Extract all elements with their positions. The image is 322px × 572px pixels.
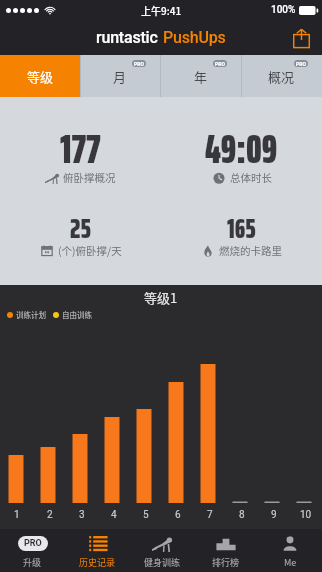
staticText: 6 <box>175 509 181 521</box>
staticText: 7 <box>207 509 213 521</box>
staticText: 100% <box>271 4 296 16</box>
button[interactable]: 等级 <box>0 55 80 97</box>
button[interactable]: 概况 <box>241 55 322 97</box>
staticText: 等级 <box>27 67 54 86</box>
staticText: 8 <box>239 509 245 521</box>
staticText: 升级 <box>23 556 42 569</box>
staticText: 历史记录 <box>79 556 116 569</box>
staticText: PRO <box>296 61 306 67</box>
staticText: PRO <box>24 538 42 549</box>
staticText: 25 <box>70 207 91 249</box>
button[interactable]: 年 <box>160 55 241 97</box>
button[interactable]: 月 <box>80 55 160 97</box>
staticText: (个)俯卧撑/天 <box>58 243 122 258</box>
button[interactable]: Share <box>287 24 315 52</box>
staticText: 5 <box>143 509 149 521</box>
staticText: 等级1 <box>144 288 178 307</box>
staticText: 训练计划 <box>16 309 46 320</box>
staticText: 1 <box>14 509 20 521</box>
button[interactable]: 历史记录 <box>65 529 130 572</box>
staticText: 月 <box>113 67 127 86</box>
staticText: 165 <box>227 207 256 249</box>
staticText: runtastic <box>96 28 158 47</box>
staticText: Me <box>284 556 297 569</box>
button[interactable]: Me <box>258 529 322 572</box>
staticText: PRO <box>215 61 225 67</box>
staticText: 年 <box>194 67 208 86</box>
staticText: 排行榜 <box>212 556 240 569</box>
staticText: 燃烧的卡路里 <box>219 243 282 258</box>
staticText: 俯卧撑概况 <box>63 170 116 185</box>
staticText: 3 <box>79 509 85 521</box>
staticText: 健身训练 <box>144 556 181 569</box>
button[interactable]: PRO <box>0 529 65 572</box>
staticText: 10 <box>300 509 312 521</box>
staticText: 总体时长 <box>230 170 272 185</box>
staticText: PRO <box>134 61 144 67</box>
staticText: 自由训练 <box>62 309 92 320</box>
staticText: 2 <box>47 509 53 521</box>
staticText: 9 <box>271 509 277 521</box>
staticText: 上午9:41 <box>141 3 182 17</box>
staticText: 4 <box>111 509 117 521</box>
staticText: 49:09 <box>205 118 278 181</box>
staticText: PushUps <box>163 28 226 47</box>
button[interactable]: 排行榜 <box>194 529 258 572</box>
staticText: 概况 <box>268 67 295 86</box>
button[interactable]: 健身训练 <box>130 529 194 572</box>
staticText: 177 <box>60 118 101 181</box>
